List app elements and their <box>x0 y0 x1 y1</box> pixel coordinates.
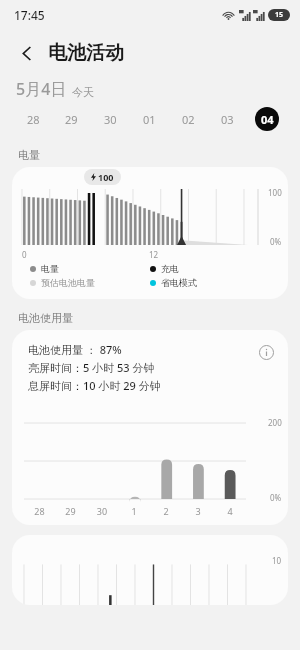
staticText: 电量 <box>18 148 40 162</box>
staticText: 预估电池电量 <box>41 277 95 288</box>
staticText: 100 <box>268 187 282 198</box>
staticText: 今天 <box>72 85 94 99</box>
staticText: 28 <box>24 505 55 517</box>
button[interactable]: 100 <box>12 167 288 299</box>
staticText: 电量 <box>41 263 59 274</box>
button[interactable]: Info <box>256 342 276 362</box>
staticText: 12 <box>149 249 159 260</box>
button[interactable]: 29 <box>52 102 91 136</box>
staticText: 电池使用量 <box>18 311 73 325</box>
staticText: 充电 <box>161 263 179 274</box>
button[interactable]: 电池使用量 ： 87% <box>12 330 288 525</box>
staticText: 亮屏时间：5 小时 53 分钟 <box>28 360 155 375</box>
button[interactable]: 01 <box>130 102 169 136</box>
button[interactable]: 28 <box>14 102 52 136</box>
staticText: 02 <box>182 112 195 127</box>
staticText: 29 <box>55 505 86 517</box>
staticText: 2 <box>150 505 182 517</box>
staticText: 5月4日 <box>16 78 67 100</box>
staticText: 0% <box>270 236 282 247</box>
staticText: 15 <box>275 10 284 20</box>
button[interactable]: 10 <box>12 535 288 605</box>
staticText: 息屏时间：10 小时 29 分钟 <box>28 378 161 393</box>
staticText: 03 <box>221 112 234 127</box>
button[interactable]: 02 <box>169 102 208 136</box>
staticText: 电池使用量 ： 87% <box>28 342 122 357</box>
staticText: 29 <box>65 112 78 127</box>
button[interactable]: 03 <box>208 102 247 136</box>
staticText: 3 <box>182 505 214 517</box>
staticText: 04 <box>261 112 274 127</box>
staticText: 28 <box>27 112 40 127</box>
staticText: 17:45 <box>14 7 45 23</box>
button[interactable]: Back <box>14 40 40 66</box>
staticText: 30 <box>86 505 118 517</box>
staticText: 1 <box>118 505 150 517</box>
staticText: 电池活动 <box>48 41 124 65</box>
staticText: 01 <box>143 112 156 127</box>
button[interactable]: 04 <box>247 102 286 136</box>
staticText: 10 <box>272 555 282 566</box>
staticText: 30 <box>104 112 117 127</box>
button[interactable]: 30 <box>91 102 130 136</box>
staticText: 省电模式 <box>161 277 197 288</box>
staticText: 4 <box>214 505 246 517</box>
staticText: 200 <box>268 417 282 428</box>
staticText: 0% <box>270 492 282 503</box>
staticText: 100 <box>98 171 114 183</box>
staticText: 0 <box>22 249 27 260</box>
